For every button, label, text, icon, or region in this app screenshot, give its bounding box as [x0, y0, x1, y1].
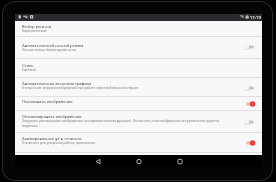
button[interactable]: Выбор региона	[15, 21, 262, 36]
staticText: 11:19	[250, 15, 261, 20]
button[interactable]: Показывать изображения	[15, 97, 262, 110]
button[interactable]: Анимированные gif в отписках	[246, 137, 262, 149]
staticText: Отключите для ускорения работы приложени…	[22, 141, 95, 145]
staticText: Ночная тема в тёмное время суток	[22, 48, 77, 52]
button[interactable]: Анимированные gif в отписках	[15, 133, 262, 152]
button[interactable]: Показывать изображения	[246, 98, 262, 110]
button[interactable]: Стиль	[15, 59, 262, 77]
staticText: Оптимизировать изображения	[22, 114, 82, 119]
button[interactable]: Home	[129, 155, 149, 167]
staticText: Автоматический ночной режим	[22, 43, 84, 48]
button[interactable]: Автоматическая экономия трафика	[246, 82, 262, 94]
button[interactable]: Автоматический ночной режим	[15, 36, 262, 58]
button[interactable]: Оптимизировать изображения	[15, 111, 262, 133]
button[interactable]: Автоматическая экономия трафика	[15, 78, 262, 97]
staticText: Отключение загрузки изображений при рабо…	[22, 86, 139, 90]
staticText: Кириллический	[22, 29, 47, 33]
button[interactable]: Автоматический ночной режим	[246, 41, 262, 53]
staticText: Светлый	[22, 68, 36, 72]
staticText: Стиль	[22, 63, 34, 68]
staticText: Показывать изображения	[22, 99, 73, 104]
button[interactable]: Back	[88, 155, 108, 167]
staticText: Автоматическая экономия трафика	[22, 81, 92, 86]
staticText: Выбор региона	[22, 24, 52, 29]
staticText: Анимированные gif в отписках	[22, 136, 82, 141]
button[interactable]: Оптимизировать изображения	[246, 116, 262, 128]
staticText: Загружать уменьшенные изображения (экспе…	[22, 119, 220, 127]
button[interactable]: Recent apps	[170, 155, 190, 167]
